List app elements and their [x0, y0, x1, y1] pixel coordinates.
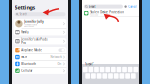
- staticText: Settings: [14, 4, 35, 11]
- button[interactable]: Airplane Mode: [14, 47, 66, 53]
- staticText: Stolen Device Protection: [90, 10, 124, 14]
- staticText: Airplane Mode: [21, 48, 42, 52]
- button[interactable]: Bluetooth: [14, 61, 66, 67]
- staticText: Cellular: [21, 69, 32, 72]
- staticText: Wi-Fi: [21, 55, 27, 59]
- button[interactable]: Stolen Device Protection: [82, 10, 139, 16]
- button[interactable]: Clear search: [124, 5, 127, 8]
- button[interactable]: Cellular: [14, 68, 66, 74]
- staticText: brexit: [89, 5, 96, 8]
- button[interactable]: Wi-Fi: [14, 54, 66, 60]
- staticText: Family: [21, 30, 28, 34]
- staticText: Bluetooth: [21, 62, 36, 66]
- button[interactable]: Family: [14, 29, 66, 35]
- staticText: “brexit”: [84, 62, 93, 66]
- staticText: On: [57, 62, 61, 66]
- staticText: Apple ID, iCloud, Media: [24, 24, 37, 25]
- button[interactable]: Jennifer's AirPods Pro: [14, 38, 66, 44]
- staticText: Network: [50, 55, 61, 59]
- button[interactable]: Cancel: [128, 5, 137, 8]
- button[interactable]: Jennifer Jolly: [14, 19, 66, 29]
- staticText: Jennifer's AirPods Pro: [21, 38, 47, 45]
- staticText: & Purchases: [24, 26, 34, 27]
- staticText: Search: [19, 12, 27, 16]
- staticText: Cancel: [128, 5, 137, 8]
- staticText: Passcode: [90, 14, 98, 16]
- staticText: Jennifer Jolly: [24, 20, 43, 23]
